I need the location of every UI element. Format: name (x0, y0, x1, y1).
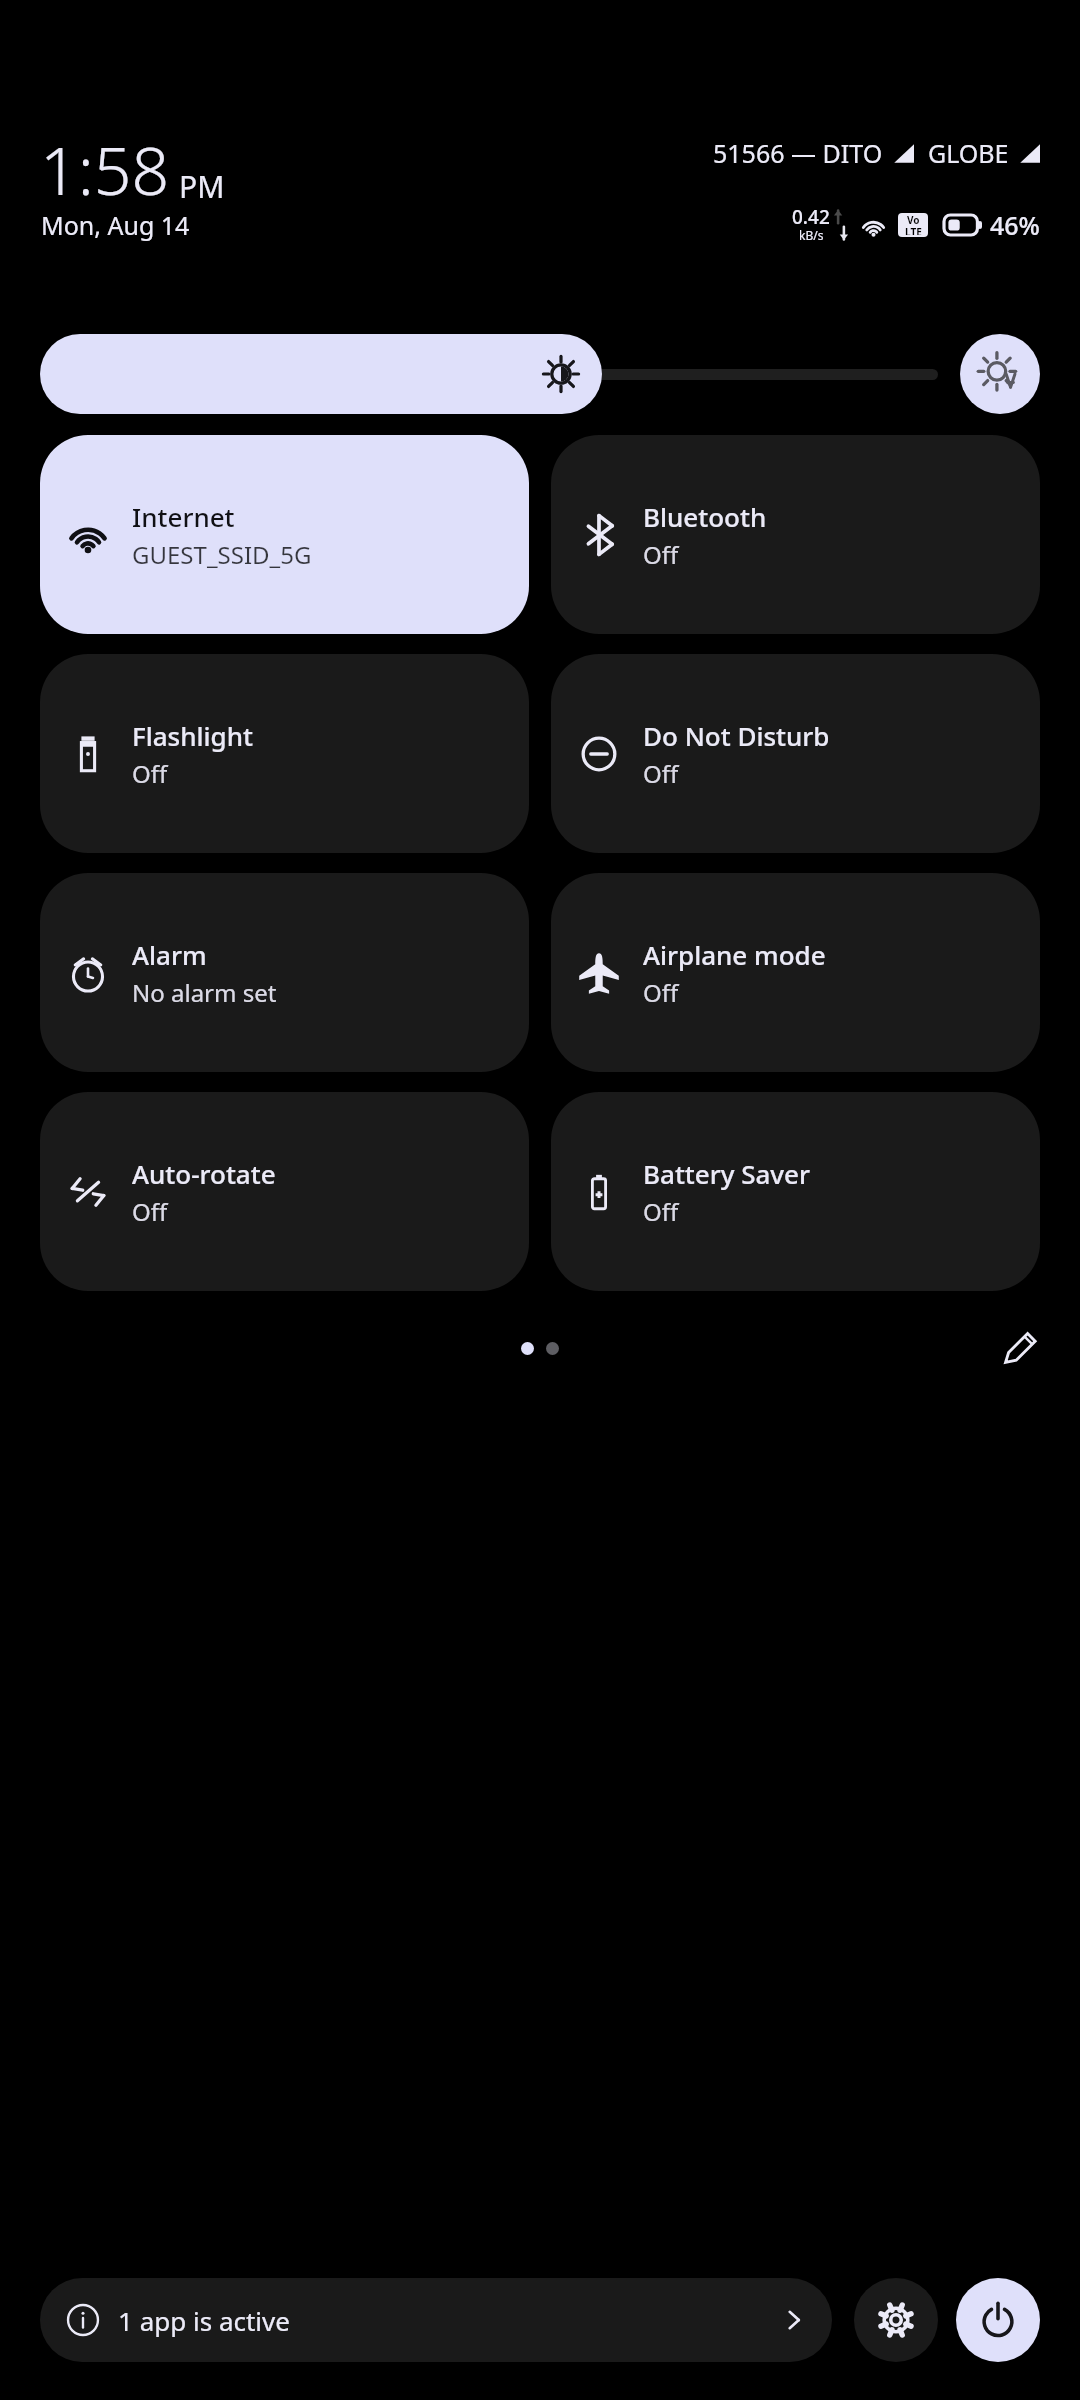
staticText: Vo (907, 213, 920, 227)
button[interactable]: Brightness (40, 334, 938, 414)
staticText: Off (132, 1195, 168, 1228)
staticText: Bluetooth (643, 499, 767, 534)
staticText: GLOBE (928, 136, 1009, 170)
staticText: Alarm (132, 937, 207, 972)
button[interactable]: Flashlight (40, 654, 529, 853)
button[interactable]: Edit tiles (984, 1312, 1056, 1384)
button[interactable]: Internet (40, 435, 529, 634)
button[interactable]: Settings (854, 2278, 938, 2362)
staticText: 51566 — DITO (713, 136, 883, 170)
staticText: Internet (132, 499, 235, 534)
staticText: PM (179, 166, 225, 207)
staticText: LTE (905, 225, 922, 235)
staticText: GUEST_SSID_5G (132, 538, 312, 571)
staticText: 0.42 (792, 204, 830, 230)
staticText: Off (132, 757, 168, 790)
staticText: Battery Saver (643, 1156, 810, 1191)
staticText: Airplane mode (643, 937, 826, 972)
button[interactable]: Do Not Disturb (551, 654, 1040, 853)
button[interactable]: Auto brightness (960, 334, 1040, 414)
staticText: 1:58 (40, 124, 170, 214)
staticText: Auto-rotate (132, 1156, 276, 1191)
button[interactable]: Bluetooth (551, 435, 1040, 634)
button[interactable]: Power (956, 2278, 1040, 2362)
staticText: kB/s (799, 227, 824, 243)
staticText: Do Not Disturb (643, 718, 830, 753)
staticText: 46% (990, 208, 1040, 242)
button[interactable]: 1 app is active (40, 2278, 832, 2362)
staticText: Off (643, 757, 679, 790)
staticText: Flashlight (132, 718, 253, 753)
button[interactable]: Battery Saver (551, 1092, 1040, 1291)
button[interactable]: Alarm (40, 873, 529, 1072)
button[interactable]: Auto-rotate (40, 1092, 529, 1291)
staticText: No alarm set (132, 976, 277, 1009)
staticText: Off (643, 538, 679, 571)
staticText: Off (643, 976, 679, 1009)
staticText: Off (643, 1195, 679, 1228)
staticText: 1 app is active (118, 2303, 782, 2338)
button[interactable]: Airplane mode (551, 873, 1040, 1072)
staticText: Mon, Aug 14 (41, 208, 190, 242)
